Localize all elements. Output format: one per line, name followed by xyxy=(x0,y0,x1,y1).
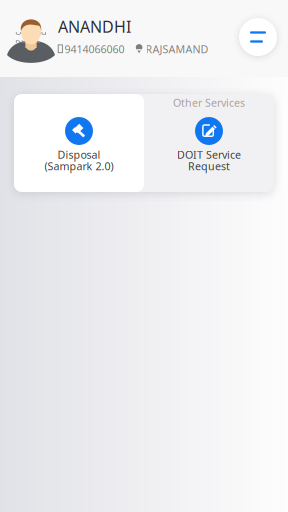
staticText: ANANDHI xyxy=(58,16,131,37)
button[interactable]: DOIT Service xyxy=(144,94,274,192)
staticText: Disposal xyxy=(57,147,100,162)
button[interactable]: Menu xyxy=(239,18,277,56)
staticText: (Sampark 2.0) xyxy=(44,159,113,173)
staticText: 9414066060 xyxy=(65,42,125,56)
staticText: Upload Photo xyxy=(15,25,47,50)
staticText: DOIT Service xyxy=(177,147,241,162)
staticText: Request xyxy=(188,159,230,173)
button[interactable]: Disposal xyxy=(14,94,144,192)
staticText: RAJSAMAND xyxy=(146,42,209,56)
staticText: Other Services xyxy=(173,95,245,110)
